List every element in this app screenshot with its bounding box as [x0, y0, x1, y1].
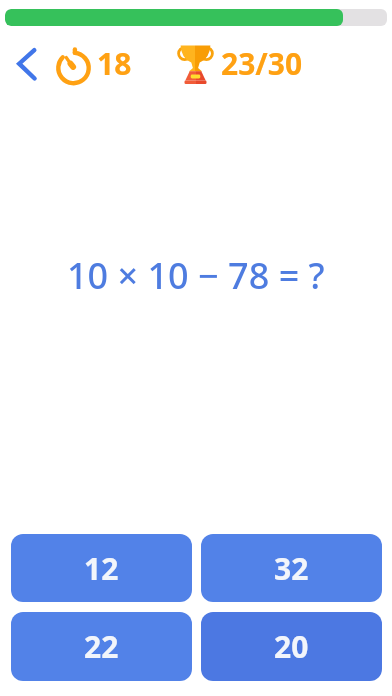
button[interactable]: [10, 45, 44, 83]
staticText: 22: [84, 626, 119, 667]
staticText: 12: [84, 548, 119, 589]
staticText: 18: [97, 43, 132, 84]
button[interactable]: 12: [11, 534, 192, 602]
button[interactable]: 32: [201, 534, 382, 602]
staticText: 20: [274, 626, 309, 667]
button[interactable]: 22: [11, 612, 192, 681]
staticText: 32: [274, 548, 309, 589]
button[interactable]: 20: [201, 612, 382, 681]
staticText: 10 × 10 − 78 = ?: [67, 251, 325, 291]
staticText: 23/30: [221, 43, 303, 84]
